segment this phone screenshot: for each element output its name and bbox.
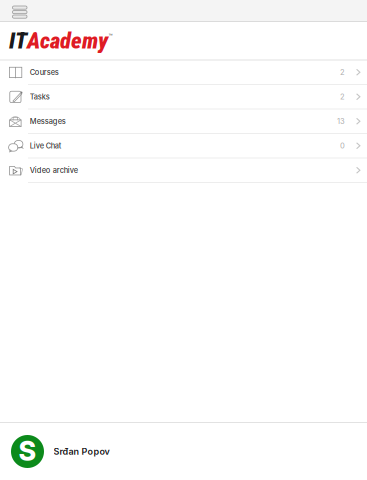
staticText: Live Chat — [30, 141, 62, 150]
staticText: Video archive — [30, 166, 78, 175]
staticText: 13 — [337, 117, 345, 126]
staticText: 2 — [340, 68, 345, 77]
staticText: ™ — [108, 32, 112, 40]
button[interactable]: Video archive — [0, 158, 367, 183]
staticText: Academy — [27, 27, 108, 54]
button[interactable]: Messages — [0, 109, 367, 134]
button[interactable]: Tasks — [0, 85, 367, 109]
staticText: 2 — [340, 92, 345, 101]
staticText: IT — [9, 27, 27, 54]
button[interactable]: Menu — [0, 0, 367, 21]
staticText: Srđan Popov — [53, 446, 109, 457]
staticText: S — [18, 435, 36, 467]
button[interactable]: S — [0, 423, 367, 480]
staticText: Courses — [30, 68, 59, 77]
staticText: Tasks — [30, 92, 50, 101]
button[interactable]: Live Chat — [0, 134, 367, 158]
staticText: 0 — [340, 141, 345, 150]
staticText: Messages — [30, 117, 66, 126]
button[interactable]: Courses — [0, 60, 367, 85]
